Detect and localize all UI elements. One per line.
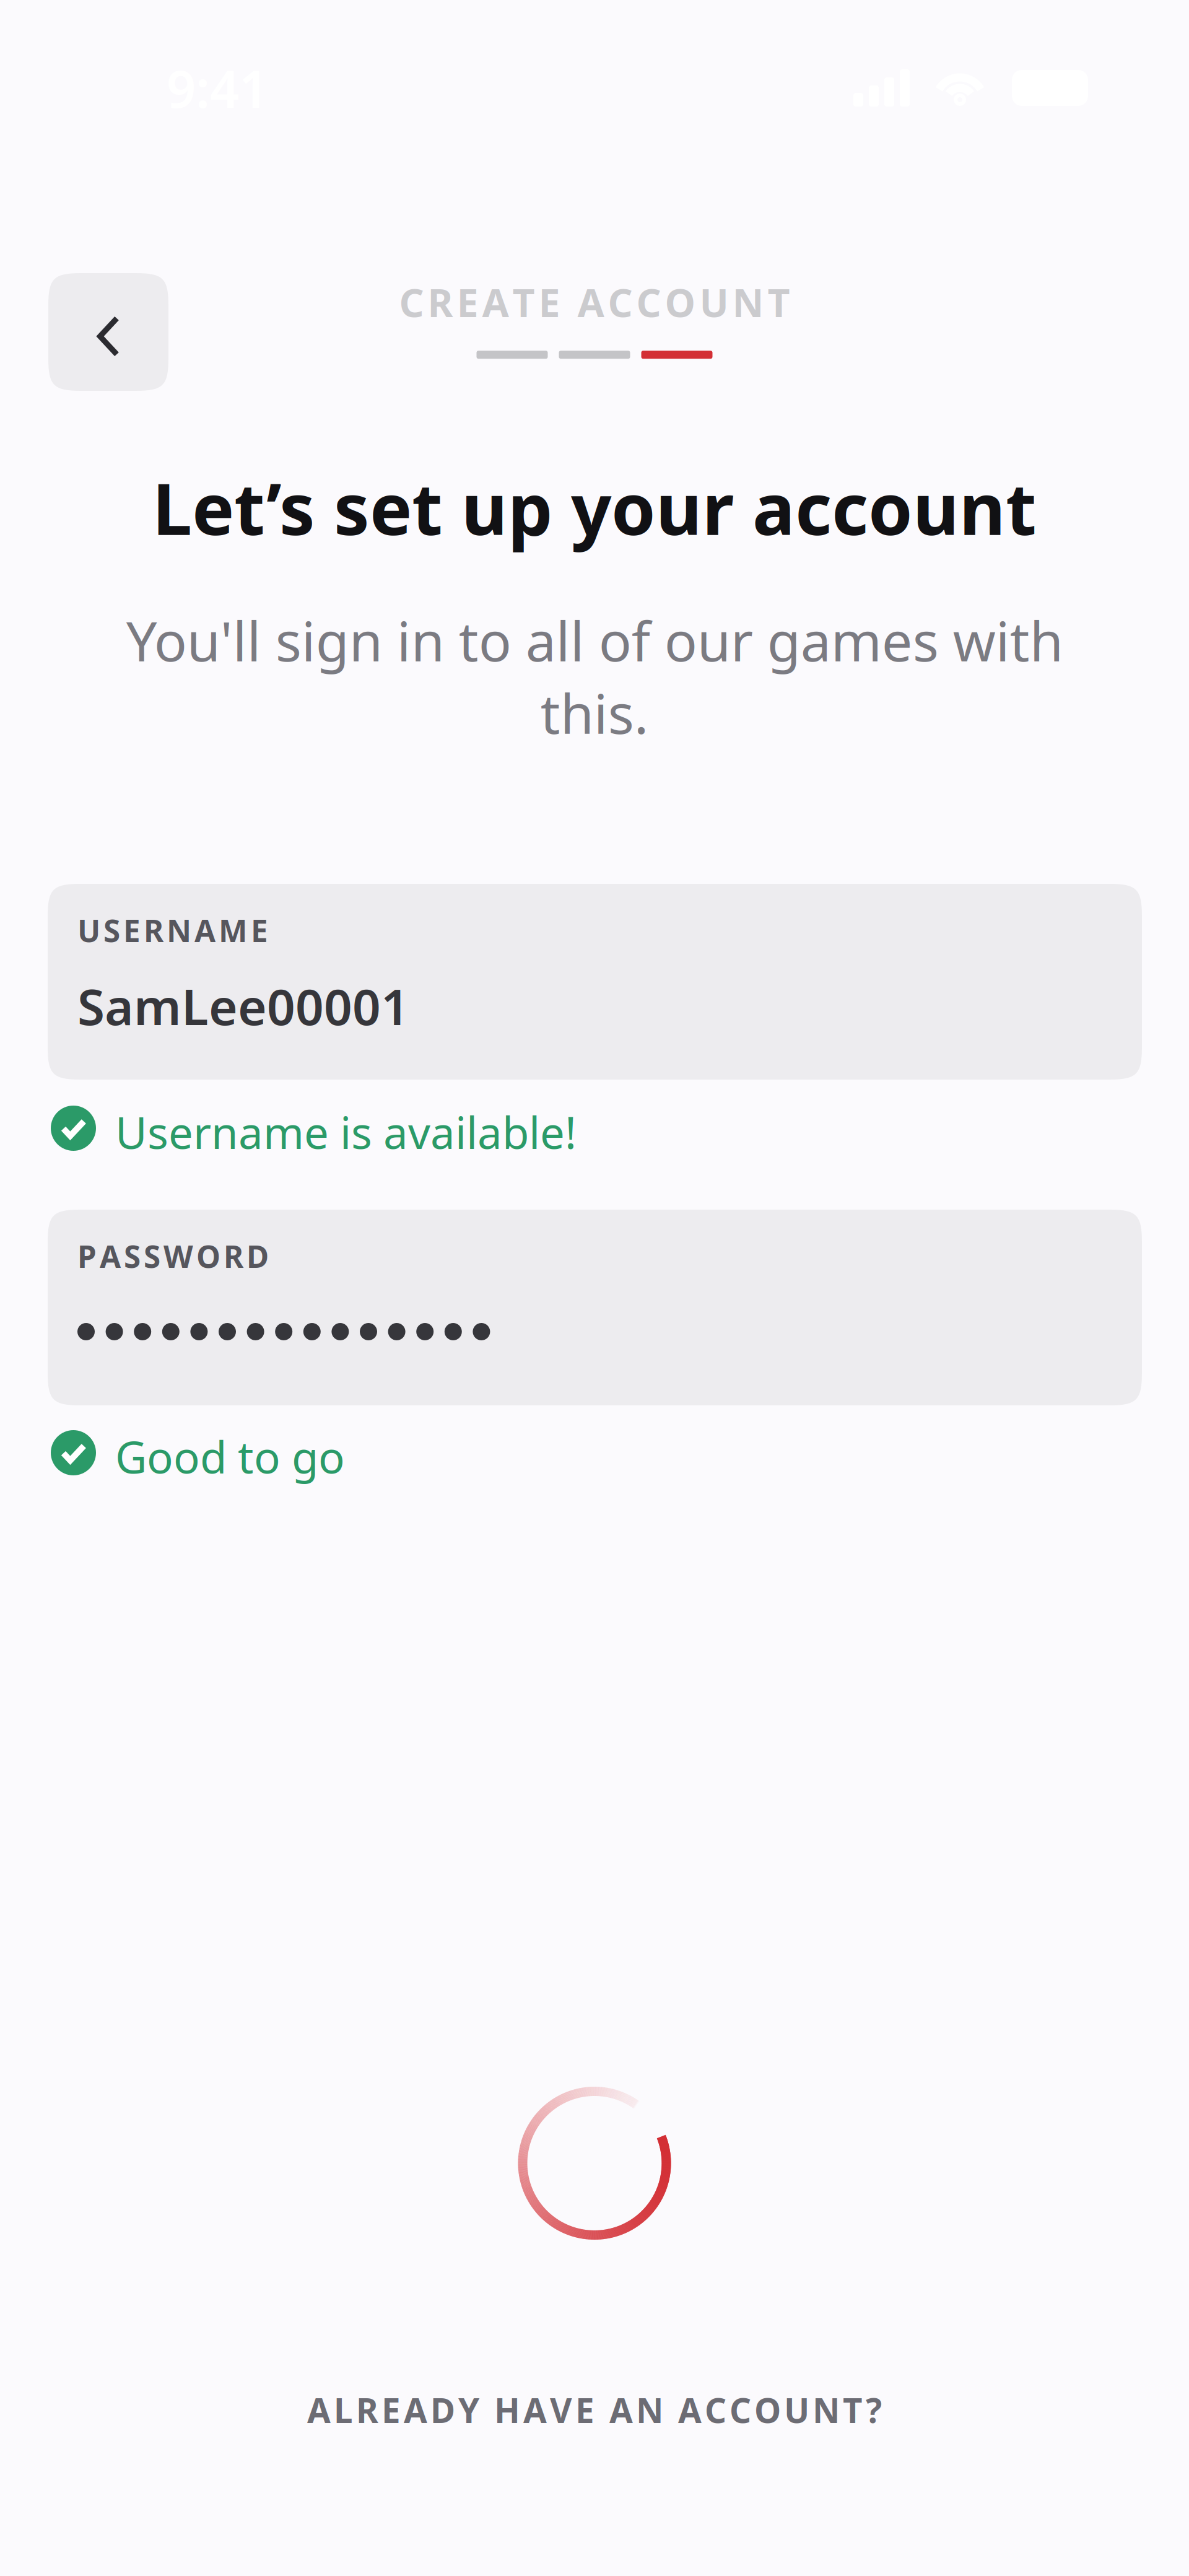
staticText: U S E R N A M E	[77, 910, 268, 950]
staticText: You'll sign in to all of our games with …	[126, 604, 1063, 749]
staticText: Username is available!	[115, 1103, 577, 1161]
button[interactable]: Back	[48, 273, 168, 391]
staticText: C R E A T E A C C O U N T	[399, 276, 790, 328]
staticText: Let’s set up your account	[152, 460, 1037, 555]
button[interactable]: A L R E A D Y H A V E A N A C C O U N T …	[0, 2371, 1189, 2448]
staticText: Good to go	[115, 1427, 345, 1486]
staticText: SamLee00001	[77, 973, 409, 1039]
staticText: P A S S W O R D	[77, 1236, 269, 1276]
staticText: A L R E A D Y H A V E A N A C C O U N T …	[307, 2387, 882, 2432]
